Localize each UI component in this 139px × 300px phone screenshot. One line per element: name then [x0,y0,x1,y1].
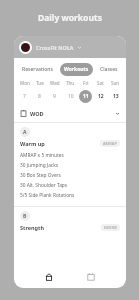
staticText: Strength [20,224,45,231]
staticText: AMRAP [103,141,117,146]
button[interactable]: CrossFit NOLA [14,36,126,58]
staticText: A [23,129,27,136]
staticText: Classes [100,66,118,73]
staticText: 30 Alt. Shoulder Taps [20,182,68,189]
staticText: Tue [36,80,44,86]
button[interactable]: Home [41,269,57,285]
staticText: 5/5 Side Plank Rotations [20,192,75,199]
button[interactable]: AMRAP [100,140,120,147]
button[interactable]: 7 [18,90,31,103]
button[interactable]: 13 [109,90,122,103]
staticText: Daily workouts [38,12,102,24]
staticText: 30 Box Step Overs [20,172,61,179]
staticText: 10 [68,93,74,100]
staticText: EMOM [104,225,117,230]
staticText: Mon [20,80,30,86]
button[interactable]: 9 [48,90,61,103]
staticText: Thu [66,80,75,86]
staticText: 8 [38,93,41,100]
button[interactable]: 11 [79,90,92,103]
staticText: AMRAP x 5 minutes [20,152,64,159]
staticText: Warm up [20,140,45,147]
staticText: Fri [83,80,89,86]
button[interactable]: 12 [94,90,107,103]
staticText: WOD [30,110,44,117]
staticText: 12 [98,93,104,100]
staticText: 11 [83,93,89,100]
button[interactable]: Workouts [60,63,93,76]
other: Expand [115,111,120,116]
staticText: 9 [53,93,56,100]
staticText: CrossFit NOLA [36,44,74,51]
staticText: Sun [111,80,120,86]
staticText: 7 [23,93,26,100]
staticText: Sat [97,80,104,86]
staticText: 13 [113,93,119,100]
button[interactable]: Classes [96,63,122,76]
staticText: Reservations [22,66,53,73]
staticText: Workouts [64,66,89,73]
staticText: Wed [50,80,60,86]
staticText: B [23,213,27,220]
button[interactable]: WOD [14,104,126,122]
button[interactable]: Reservations [18,63,57,76]
button[interactable]: EMOM [101,224,120,231]
button[interactable]: 10 [64,90,77,103]
button[interactable]: 8 [33,90,46,103]
button[interactable]: Calendar [83,269,99,285]
staticText: 30 Jumping Jacks [20,162,59,169]
